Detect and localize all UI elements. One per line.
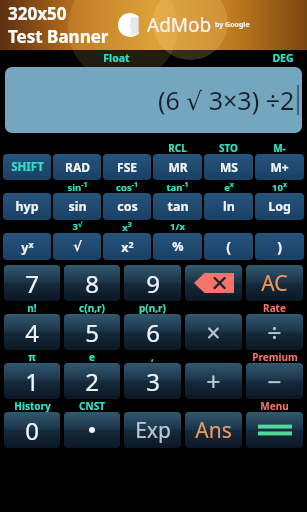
button[interactable]: Exp — [124, 412, 181, 448]
staticText: M- — [273, 141, 286, 154]
button[interactable]: ( — [204, 233, 253, 260]
button[interactable]: Log — [255, 193, 304, 220]
staticText: 1 — [25, 365, 39, 398]
staticText: Exp — [135, 416, 171, 445]
staticText: x3 — [122, 220, 132, 233]
staticText: CNST — [79, 399, 105, 412]
staticText: c(n,r) — [79, 301, 105, 314]
staticText: AC — [261, 269, 288, 298]
button[interactable]: FSE — [103, 154, 151, 180]
button[interactable]: 2 — [64, 363, 120, 399]
staticText: STO — [219, 141, 238, 154]
staticText: yx — [21, 238, 34, 256]
staticText: MS — [220, 159, 238, 175]
staticText: 320x50 — [8, 2, 67, 25]
staticText: FSE — [117, 159, 137, 175]
button[interactable]: % — [153, 233, 202, 260]
staticText: Premium — [252, 350, 298, 363]
button[interactable]: + — [185, 363, 242, 399]
staticText: M+ — [270, 159, 289, 175]
button[interactable]: ) — [255, 233, 304, 260]
button[interactable]: AC — [246, 265, 303, 301]
staticText: ( — [226, 237, 231, 256]
button[interactable]: 6 — [124, 314, 181, 350]
button[interactable]: Backspace — [185, 265, 242, 301]
staticText: p(n,r) — [139, 301, 166, 314]
button[interactable]: sin — [53, 193, 101, 220]
staticText: , — [151, 350, 154, 363]
staticText: ) — [277, 237, 282, 256]
staticText: Ans — [195, 416, 232, 445]
staticText: 8 — [85, 267, 99, 300]
button[interactable]: 1 — [4, 363, 60, 399]
button[interactable]: 5 — [64, 314, 120, 350]
staticText: 4 — [25, 316, 39, 349]
button[interactable]: cos — [103, 193, 151, 220]
staticText: % — [172, 238, 184, 255]
staticText: √ — [73, 239, 82, 254]
staticText: cos — [117, 198, 138, 215]
staticText: hyp — [15, 198, 39, 215]
button[interactable]: 8 — [64, 265, 120, 301]
staticText: ÷ — [267, 315, 282, 349]
button[interactable]: 7 — [4, 265, 60, 301]
button[interactable]: 0 — [4, 412, 60, 448]
staticText: e — [89, 350, 95, 363]
staticText: 1/x — [170, 220, 185, 233]
button[interactable]: Equals — [246, 412, 303, 448]
staticText: 5 — [85, 316, 99, 349]
button[interactable]: RAD — [53, 154, 101, 180]
button[interactable]: SHIFT — [3, 154, 51, 180]
staticText: 9 — [146, 267, 160, 300]
staticText: ex — [224, 180, 234, 193]
button[interactable]: MS — [204, 154, 253, 180]
button[interactable]: 3 — [124, 363, 181, 399]
staticText: MR — [168, 159, 188, 175]
button[interactable]: √ — [53, 233, 101, 260]
button[interactable]: x2 — [103, 233, 151, 260]
button[interactable]: ln — [204, 193, 253, 220]
button[interactable]: tan — [153, 193, 202, 220]
staticText: History — [14, 399, 51, 412]
staticText: DEG — [272, 51, 294, 65]
button[interactable]: Ans — [185, 412, 242, 448]
staticText: 10x — [272, 180, 287, 193]
staticText: Float — [103, 51, 130, 65]
staticText: Log — [268, 198, 291, 215]
staticText: n! — [27, 301, 37, 314]
staticText: (6 √ 3×3) ÷2 — [158, 83, 295, 117]
button[interactable]: 9 — [124, 265, 181, 301]
staticText: + — [206, 364, 221, 398]
staticText: π — [28, 350, 36, 363]
staticText: 2 — [85, 365, 99, 398]
staticText: cos-1 — [116, 180, 138, 193]
button[interactable]: − — [246, 363, 303, 399]
staticText: 7 — [25, 267, 39, 300]
staticText: SHIFT — [11, 159, 44, 175]
staticText: tan — [167, 198, 189, 215]
button[interactable]: (6 √ 3×3) ÷2 — [5, 67, 302, 133]
staticText: − — [267, 364, 282, 398]
staticText: ln — [223, 198, 235, 215]
button[interactable]: MR — [153, 154, 202, 180]
staticText: Menu — [260, 399, 289, 412]
button[interactable]: hyp — [3, 193, 51, 220]
staticText: 3√ — [72, 220, 83, 233]
staticText: sin — [68, 198, 87, 215]
staticText: RAD — [65, 159, 90, 175]
staticText: sin-1 — [67, 180, 88, 193]
staticText: × — [206, 315, 221, 349]
button[interactable]: 4 — [4, 314, 60, 350]
button[interactable] — [64, 412, 120, 448]
button[interactable]: yx — [3, 233, 51, 260]
staticText: RCL — [168, 141, 187, 154]
button[interactable]: ÷ — [246, 314, 303, 350]
staticText: 3 — [146, 365, 160, 398]
button[interactable]: × — [185, 314, 242, 350]
button[interactable]: M+ — [255, 154, 304, 180]
staticText: x2 — [121, 238, 134, 256]
staticText: Test Banner — [8, 25, 109, 48]
staticText: Rate — [263, 301, 286, 314]
staticText: tan-1 — [166, 180, 189, 193]
staticText: 6 — [146, 316, 160, 349]
